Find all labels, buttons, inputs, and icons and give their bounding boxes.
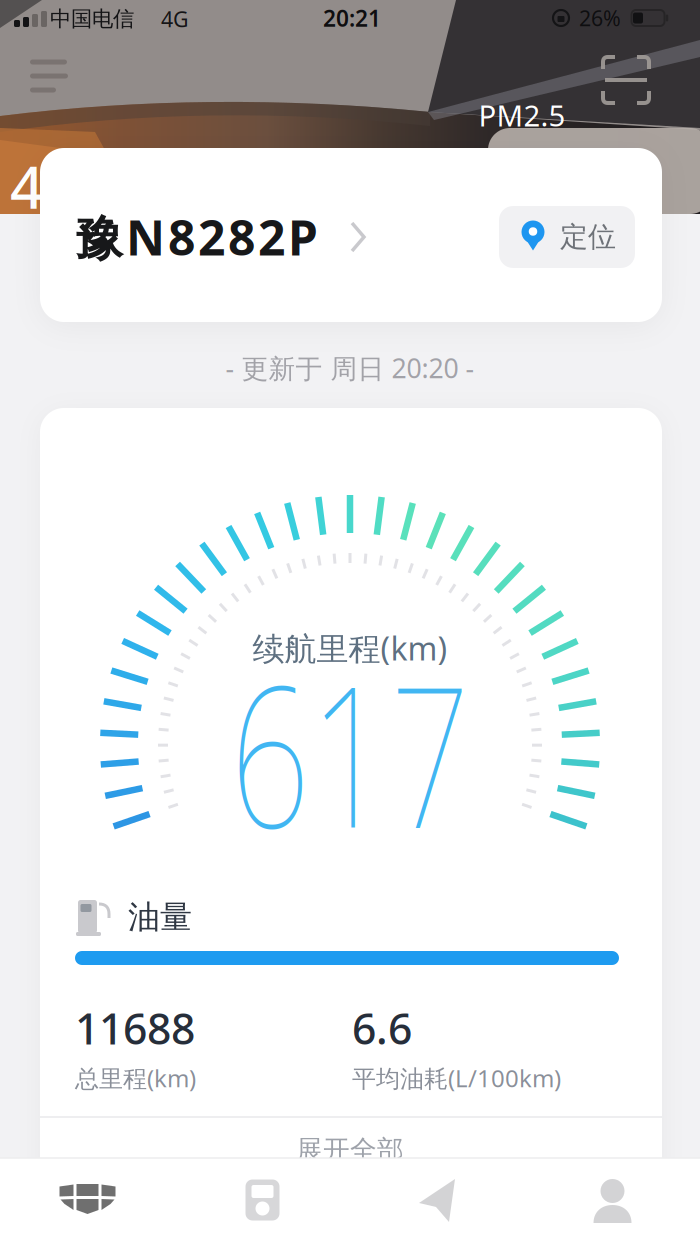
- button[interactable]: [377, 1156, 497, 1243]
- staticText: 油量: [128, 897, 192, 937]
- staticText: PM2.5: [478, 95, 565, 134]
- staticText: - 更新于 周日 20:20 -: [225, 350, 474, 386]
- staticText: 4: [10, 147, 44, 225]
- button[interactable]: 展开全部: [250, 1128, 450, 1172]
- staticText: 26%: [579, 4, 621, 32]
- staticText: 6.6: [352, 1000, 412, 1056]
- staticText: 4G: [161, 5, 189, 33]
- staticText: 豫N8282P: [75, 205, 318, 269]
- button[interactable]: 定位: [499, 206, 635, 268]
- staticText: 总里程(km): [75, 1062, 196, 1094]
- button[interactable]: [27, 1157, 147, 1244]
- staticText: 中国电信: [50, 6, 134, 32]
- staticText: 展开全部: [296, 1134, 404, 1166]
- staticText: 617: [183, 623, 516, 881]
- button[interactable]: [202, 1160, 322, 1240]
- staticText: 平均油耗(L/100km): [352, 1062, 561, 1094]
- button[interactable]: [18, 46, 78, 106]
- staticText: 11688: [75, 1000, 195, 1056]
- staticText: 续航里程(km): [252, 627, 447, 669]
- button[interactable]: 豫N8282P: [60, 192, 400, 282]
- button[interactable]: [596, 50, 656, 110]
- staticText: 20:21: [323, 3, 381, 33]
- button[interactable]: [552, 1161, 672, 1241]
- staticText: 定位: [560, 220, 616, 254]
